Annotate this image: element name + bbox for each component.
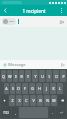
- staticText: E: [15, 74, 17, 79]
- button[interactable]: V: [30, 95, 36, 106]
- staticText: G: [31, 86, 34, 91]
- staticText: 1 recipient: [22, 8, 46, 14]
- staticText: .: [52, 110, 53, 115]
- staticText: C: [25, 98, 28, 103]
- staticText: L: [59, 86, 61, 91]
- button[interactable]: B: [37, 95, 43, 106]
- staticText: U: [41, 74, 44, 79]
- button[interactable]: N: [44, 95, 50, 106]
- button[interactable]: C: [23, 95, 29, 106]
- staticText: Z: [11, 98, 14, 103]
- button[interactable]: Enter: [56, 107, 66, 118]
- button[interactable]: D: [16, 83, 21, 94]
- button[interactable]: S: [10, 83, 15, 94]
- staticText: ,: [15, 110, 16, 115]
- staticText: Y: [34, 74, 37, 79]
- staticText: D: [17, 86, 20, 91]
- button[interactable]: G: [29, 83, 35, 94]
- button[interactable]: Message: [8, 60, 58, 69]
- button[interactable]: M: [51, 95, 57, 106]
- staticText: I: [48, 74, 50, 79]
- button[interactable]: H: [36, 83, 42, 94]
- button[interactable]: More options: [57, 6, 66, 15]
- staticText: J: [46, 86, 47, 91]
- staticText: V: [32, 98, 35, 103]
- button[interactable]: Send: [58, 60, 67, 69]
- staticText: P: [62, 74, 65, 79]
- staticText: ?123: [3, 111, 9, 115]
- staticText: H: [38, 86, 41, 91]
- staticText: T: [27, 74, 29, 79]
- button[interactable]: Attach: [1, 61, 8, 68]
- button[interactable]: R: [19, 70, 24, 82]
- staticText: S: [12, 86, 14, 91]
- staticText: K: [52, 86, 55, 91]
- button[interactable]: Z: [9, 95, 15, 106]
- button[interactable]: Back: [1, 6, 10, 15]
- button[interactable]: A: [4, 83, 9, 94]
- button[interactable]: ,: [12, 107, 18, 118]
- button[interactable]: Backspace: [58, 95, 66, 106]
- staticText: N: [46, 98, 49, 103]
- button[interactable]: J: [43, 83, 49, 94]
- staticText: X: [18, 98, 21, 103]
- button[interactable]: O: [53, 70, 59, 82]
- button[interactable]: [2, 18, 16, 25]
- button[interactable]: E: [13, 70, 18, 82]
- staticText: A: [5, 86, 8, 91]
- button[interactable]: Add recipient: [57, 18, 65, 26]
- button[interactable]: Shift: [1, 95, 8, 106]
- staticText: B: [39, 98, 42, 103]
- button[interactable]: K: [50, 83, 56, 94]
- button[interactable]: F: [22, 83, 28, 94]
- staticText: F: [24, 86, 26, 91]
- button[interactable]: ?123: [1, 107, 11, 118]
- staticText: M: [52, 98, 56, 103]
- staticText: Message: [8, 62, 26, 68]
- button[interactable]: Q: [1, 70, 6, 82]
- button[interactable]: W: [7, 70, 12, 82]
- staticText: R: [20, 74, 23, 79]
- button[interactable]: U: [39, 70, 45, 82]
- staticText: Q: [2, 74, 5, 79]
- button[interactable]: T: [25, 70, 31, 82]
- button[interactable]: L: [57, 83, 63, 94]
- button[interactable]: I: [46, 70, 52, 82]
- button[interactable]: X: [16, 95, 22, 106]
- staticText: W: [8, 74, 12, 79]
- button[interactable]: .: [49, 107, 55, 118]
- button[interactable]: P: [60, 70, 66, 82]
- staticText: O: [55, 74, 58, 79]
- button[interactable]: Y: [32, 70, 38, 82]
